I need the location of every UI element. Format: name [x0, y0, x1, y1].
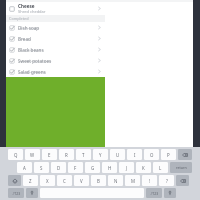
button[interactable]: .?123 — [146, 188, 162, 198]
staticText: ! — [149, 178, 151, 184]
staticText: T — [82, 152, 85, 158]
staticText: U — [116, 152, 120, 158]
staticText: Sweet potatoes — [18, 58, 52, 64]
staticText: G — [91, 165, 95, 171]
staticText: V — [80, 178, 83, 184]
button[interactable]: ! — [142, 175, 157, 186]
staticText: E — [48, 152, 51, 158]
button[interactable]: C — [57, 175, 72, 186]
button[interactable]: Emoji — [26, 188, 38, 198]
button[interactable]: F — [68, 162, 83, 173]
button[interactable]: .?123 — [8, 188, 24, 198]
staticText: M — [131, 178, 135, 184]
staticText: N — [114, 178, 118, 184]
button[interactable]: N — [108, 175, 123, 186]
staticText: J — [126, 165, 128, 171]
staticText: Q — [14, 152, 18, 158]
staticText: X — [46, 178, 49, 184]
button[interactable]: U — [110, 149, 125, 160]
staticText: ? — [166, 178, 168, 184]
button[interactable]: return — [170, 162, 192, 173]
button[interactable]: S — [34, 162, 49, 173]
button[interactable]: Sweet potatoes — [6, 55, 105, 66]
button[interactable]: B — [91, 175, 106, 186]
staticText: D — [57, 165, 61, 171]
staticText: Dish soap — [18, 25, 40, 31]
button[interactable]: J — [119, 162, 134, 173]
staticText: A — [23, 165, 26, 171]
staticText: O — [150, 152, 154, 158]
button[interactable]: Dish soap — [6, 22, 105, 33]
button[interactable]: Bread — [6, 33, 105, 44]
staticText: H — [108, 165, 112, 171]
button[interactable]: Z — [23, 175, 38, 186]
staticText: Salad greens — [18, 69, 46, 75]
staticText: W — [30, 152, 35, 158]
staticText: F — [74, 165, 77, 171]
button[interactable]: ? — [159, 175, 174, 186]
button[interactable]: Shift — [8, 175, 21, 186]
button[interactable]: Dictate — [164, 188, 176, 198]
button[interactable]: H — [102, 162, 117, 173]
button[interactable]: Delete — [176, 175, 189, 186]
staticText: C — [63, 178, 66, 184]
button[interactable]: M — [125, 175, 140, 186]
button[interactable]: G — [85, 162, 100, 173]
staticText: Y — [99, 152, 102, 158]
staticText: K — [142, 165, 145, 171]
button[interactable]: Q — [8, 149, 23, 160]
button[interactable]: D — [51, 162, 66, 173]
button[interactable]: Black beans — [6, 44, 105, 55]
staticText: L — [159, 165, 162, 171]
staticText: return — [176, 165, 187, 170]
button[interactable]: Backspace — [178, 149, 192, 160]
button[interactable]: E — [42, 149, 57, 160]
staticText: Bread — [18, 36, 31, 42]
button[interactable]: Salad greens — [6, 66, 105, 77]
staticText: .?123 — [150, 191, 159, 196]
staticText: Black beans — [18, 47, 44, 53]
button[interactable]: A — [17, 162, 32, 173]
staticText: Z — [29, 178, 32, 184]
button[interactable]: P — [161, 149, 176, 160]
button[interactable]: O — [144, 149, 159, 160]
button[interactable]: I — [127, 149, 142, 160]
staticText: R — [65, 152, 68, 158]
staticText: Shred cheddar — [18, 9, 46, 14]
button[interactable]: K — [136, 162, 151, 173]
button[interactable]: V — [74, 175, 89, 186]
staticText: B — [97, 178, 100, 184]
button[interactable]: X — [40, 175, 55, 186]
button[interactable]: L — [153, 162, 168, 173]
button[interactable]: Y — [93, 149, 108, 160]
staticText: I — [134, 152, 136, 158]
staticText: P — [167, 152, 170, 158]
staticText: .?123 — [12, 191, 21, 196]
staticText: Cheese — [18, 3, 35, 9]
button[interactable]: T — [76, 149, 91, 160]
button[interactable]: Cheese — [6, 2, 105, 15]
staticText: S — [40, 165, 43, 171]
button[interactable]: R — [59, 149, 74, 160]
staticText: Completed — [9, 16, 29, 21]
button[interactable]: W — [25, 149, 40, 160]
